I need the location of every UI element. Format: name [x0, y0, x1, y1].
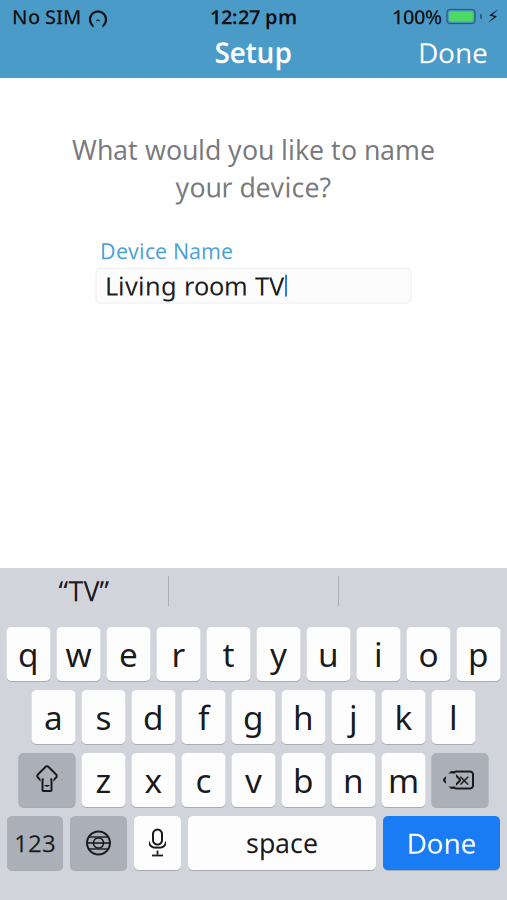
staticText: w — [65, 632, 91, 676]
button[interactable]: s — [81, 689, 125, 745]
staticText: “TV” — [58, 573, 109, 609]
button[interactable]: y — [256, 626, 300, 682]
staticText: i — [374, 632, 383, 676]
staticText: your device? — [175, 169, 331, 205]
staticText: v — [245, 758, 262, 802]
staticText: m — [388, 758, 419, 802]
button[interactable]: l — [431, 689, 475, 745]
staticText: q — [18, 632, 39, 676]
staticText: a — [44, 695, 63, 739]
staticText: g — [243, 695, 264, 739]
staticText: f — [198, 695, 209, 739]
button[interactable]: h — [281, 689, 325, 745]
button[interactable]: m — [381, 752, 425, 808]
button[interactable]: 123 — [7, 815, 63, 871]
button[interactable]: n — [331, 752, 375, 808]
staticText: Done — [418, 34, 488, 71]
button[interactable]: Living room TV — [96, 268, 411, 303]
button[interactable]: c — [181, 752, 225, 808]
staticText: n — [343, 758, 364, 802]
staticText: Living room TV — [105, 269, 284, 302]
staticText: k — [394, 695, 412, 739]
staticText: j — [349, 695, 358, 739]
staticText: No SIM — [12, 3, 81, 30]
button[interactable]: Done — [408, 28, 498, 77]
button[interactable]: e — [106, 626, 150, 682]
button[interactable]: u — [306, 626, 350, 682]
button[interactable]: k — [381, 689, 425, 745]
staticText: p — [468, 632, 489, 676]
staticText: × — [458, 767, 469, 793]
staticText: x — [144, 758, 162, 802]
staticText: What would you like to name — [72, 132, 435, 167]
staticText: r — [171, 632, 185, 676]
staticText: Done — [406, 824, 476, 862]
staticText: h — [293, 695, 314, 739]
staticText: z — [95, 758, 111, 802]
button[interactable]: z — [81, 752, 125, 808]
staticText: e — [119, 632, 138, 676]
staticText: 100% — [392, 3, 442, 30]
button[interactable]: b — [281, 752, 325, 808]
button[interactable]: Next keyboard — [70, 815, 127, 871]
button[interactable]: q — [6, 626, 50, 682]
button[interactable]: j — [331, 689, 375, 745]
button[interactable]: Done — [383, 815, 500, 871]
button[interactable]: a — [31, 689, 75, 745]
staticText: b — [293, 758, 314, 802]
button[interactable]: w — [56, 626, 100, 682]
button[interactable]: Dictate — [134, 815, 181, 871]
staticText: u — [318, 632, 339, 676]
staticText: d — [143, 695, 164, 739]
staticText: Device Name — [100, 237, 233, 265]
staticText: Setup — [214, 34, 292, 71]
button[interactable]: Shift — [18, 752, 75, 808]
button[interactable]: space — [188, 815, 376, 871]
button[interactable]: t — [206, 626, 250, 682]
staticText: space — [246, 825, 318, 861]
button[interactable]: r — [156, 626, 200, 682]
button[interactable]: g — [231, 689, 275, 745]
button[interactable]: Delete — [431, 752, 488, 808]
button[interactable]: f — [181, 689, 225, 745]
button[interactable]: p — [456, 626, 500, 682]
staticText: 123 — [14, 827, 56, 859]
staticText: y — [270, 632, 287, 676]
staticText: ⚡︎ — [487, 7, 499, 26]
button[interactable]: o — [406, 626, 450, 682]
button[interactable]: “TV” — [0, 568, 168, 614]
staticText: 12:27 pm — [210, 3, 297, 30]
button[interactable]: i — [356, 626, 400, 682]
button[interactable]: x — [131, 752, 175, 808]
button[interactable]: d — [131, 689, 175, 745]
staticText: s — [95, 695, 111, 739]
staticText: t — [222, 632, 234, 676]
staticText: l — [449, 695, 458, 739]
button[interactable]: v — [231, 752, 275, 808]
staticText: o — [418, 632, 438, 676]
staticText: c — [195, 758, 211, 802]
